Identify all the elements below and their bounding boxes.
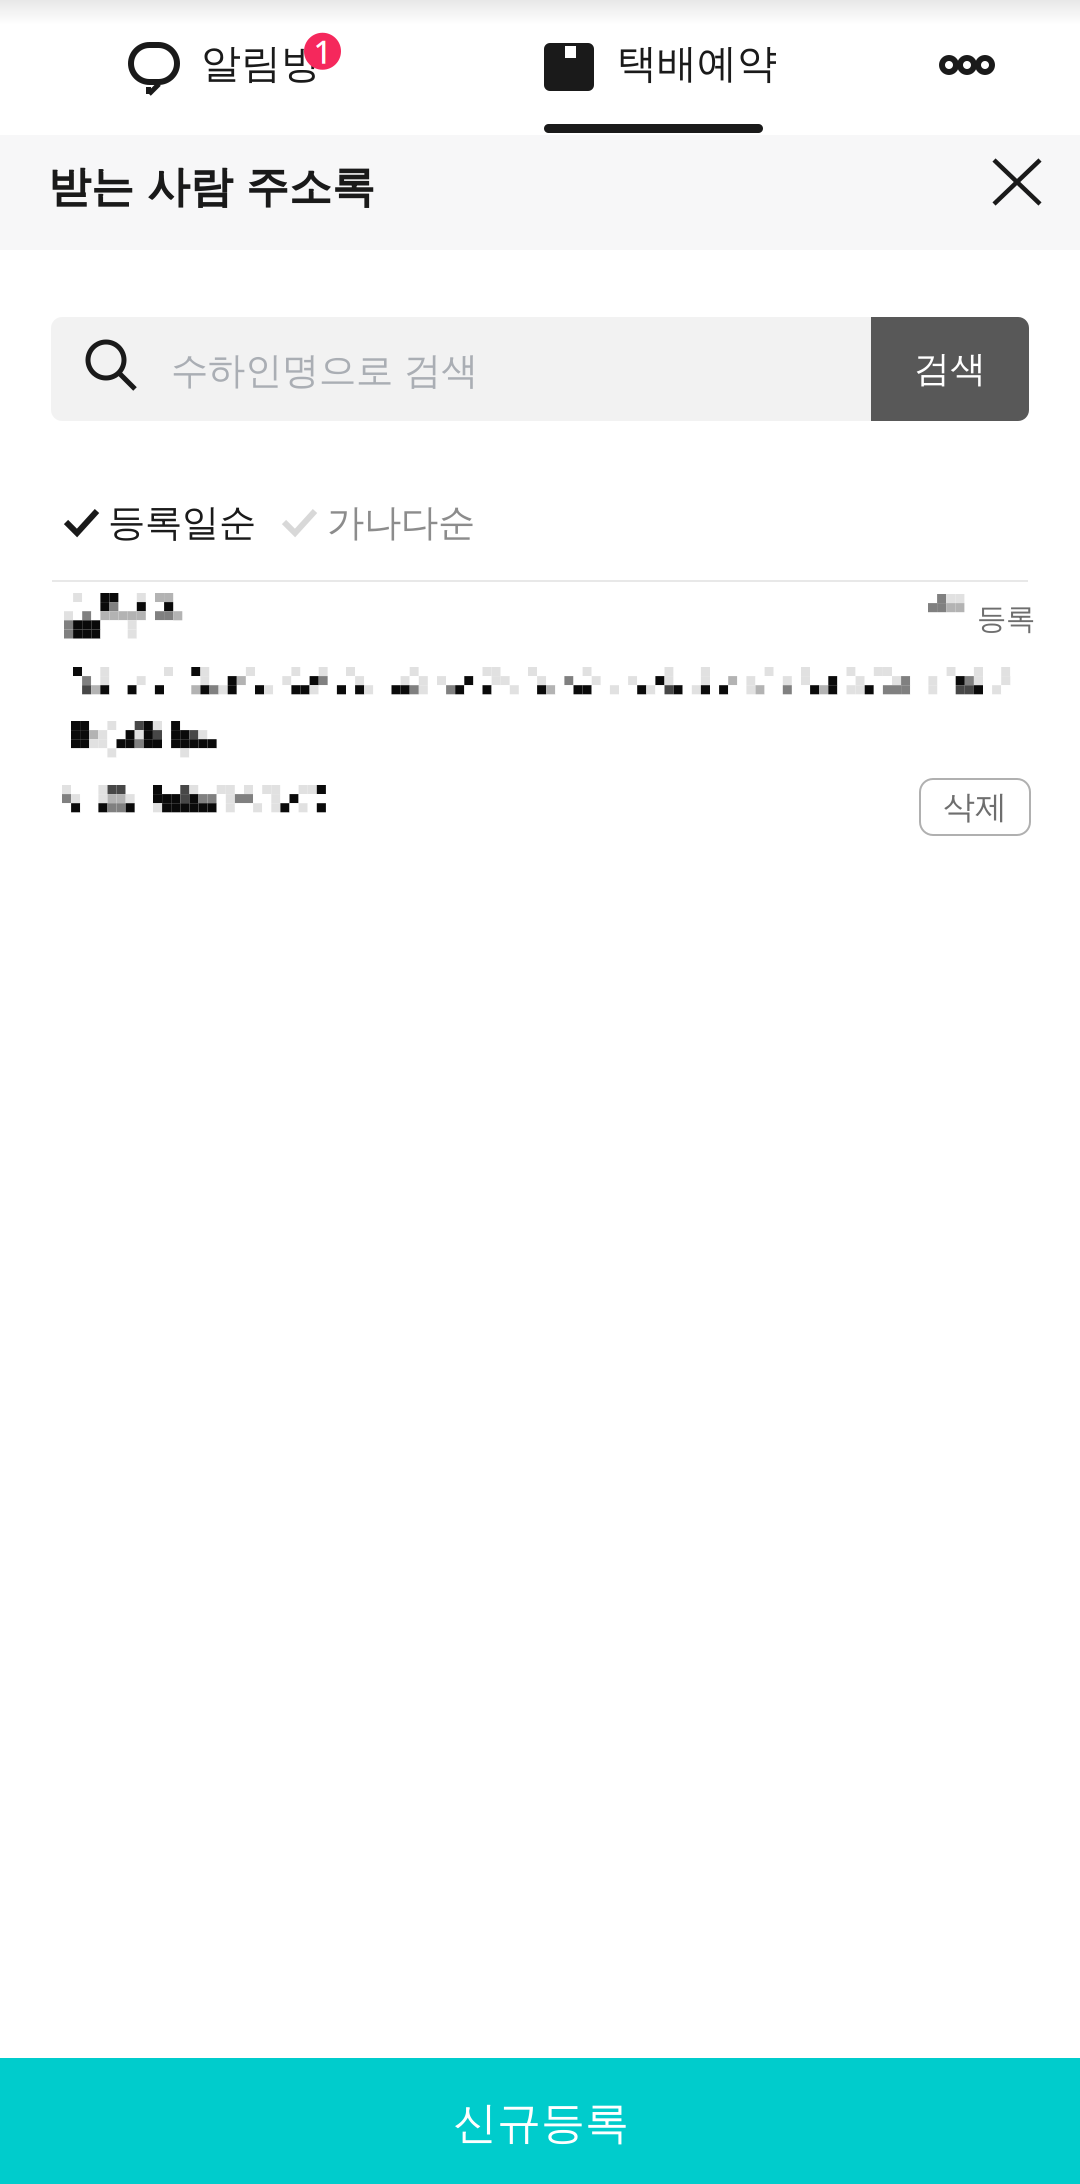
button[interactable]: 검색 [871, 317, 1029, 421]
button[interactable]: 택배예약 [544, 26, 766, 135]
staticText: 1 [313, 30, 331, 72]
staticText: 알림방 [201, 39, 321, 88]
button[interactable]: 닫기 [972, 137, 1062, 227]
button[interactable]: 신규등록 [0, 2058, 1080, 2184]
staticText: 신규등록 [453, 2096, 629, 2150]
staticText: 등록일순 [108, 500, 256, 546]
staticText: 삭제 [943, 787, 1007, 827]
staticText: 수하인명으로 검색 [171, 348, 478, 394]
staticText: 택배예약 [617, 39, 777, 88]
button[interactable]: 등록일순 [63, 489, 263, 551]
staticText: 등록 [977, 601, 1035, 637]
button[interactable]: 알림방 [120, 26, 370, 126]
staticText: 가나다순 [327, 500, 475, 546]
button[interactable]: 더보기 [920, 26, 1030, 110]
staticText: 받는 사람 주소록 [48, 161, 375, 213]
button[interactable]: 삭제 [920, 779, 1030, 835]
staticText: 검색 [914, 347, 986, 391]
button[interactable]: 등록 [0, 582, 1080, 840]
button[interactable]: 가나다순 [281, 489, 481, 551]
